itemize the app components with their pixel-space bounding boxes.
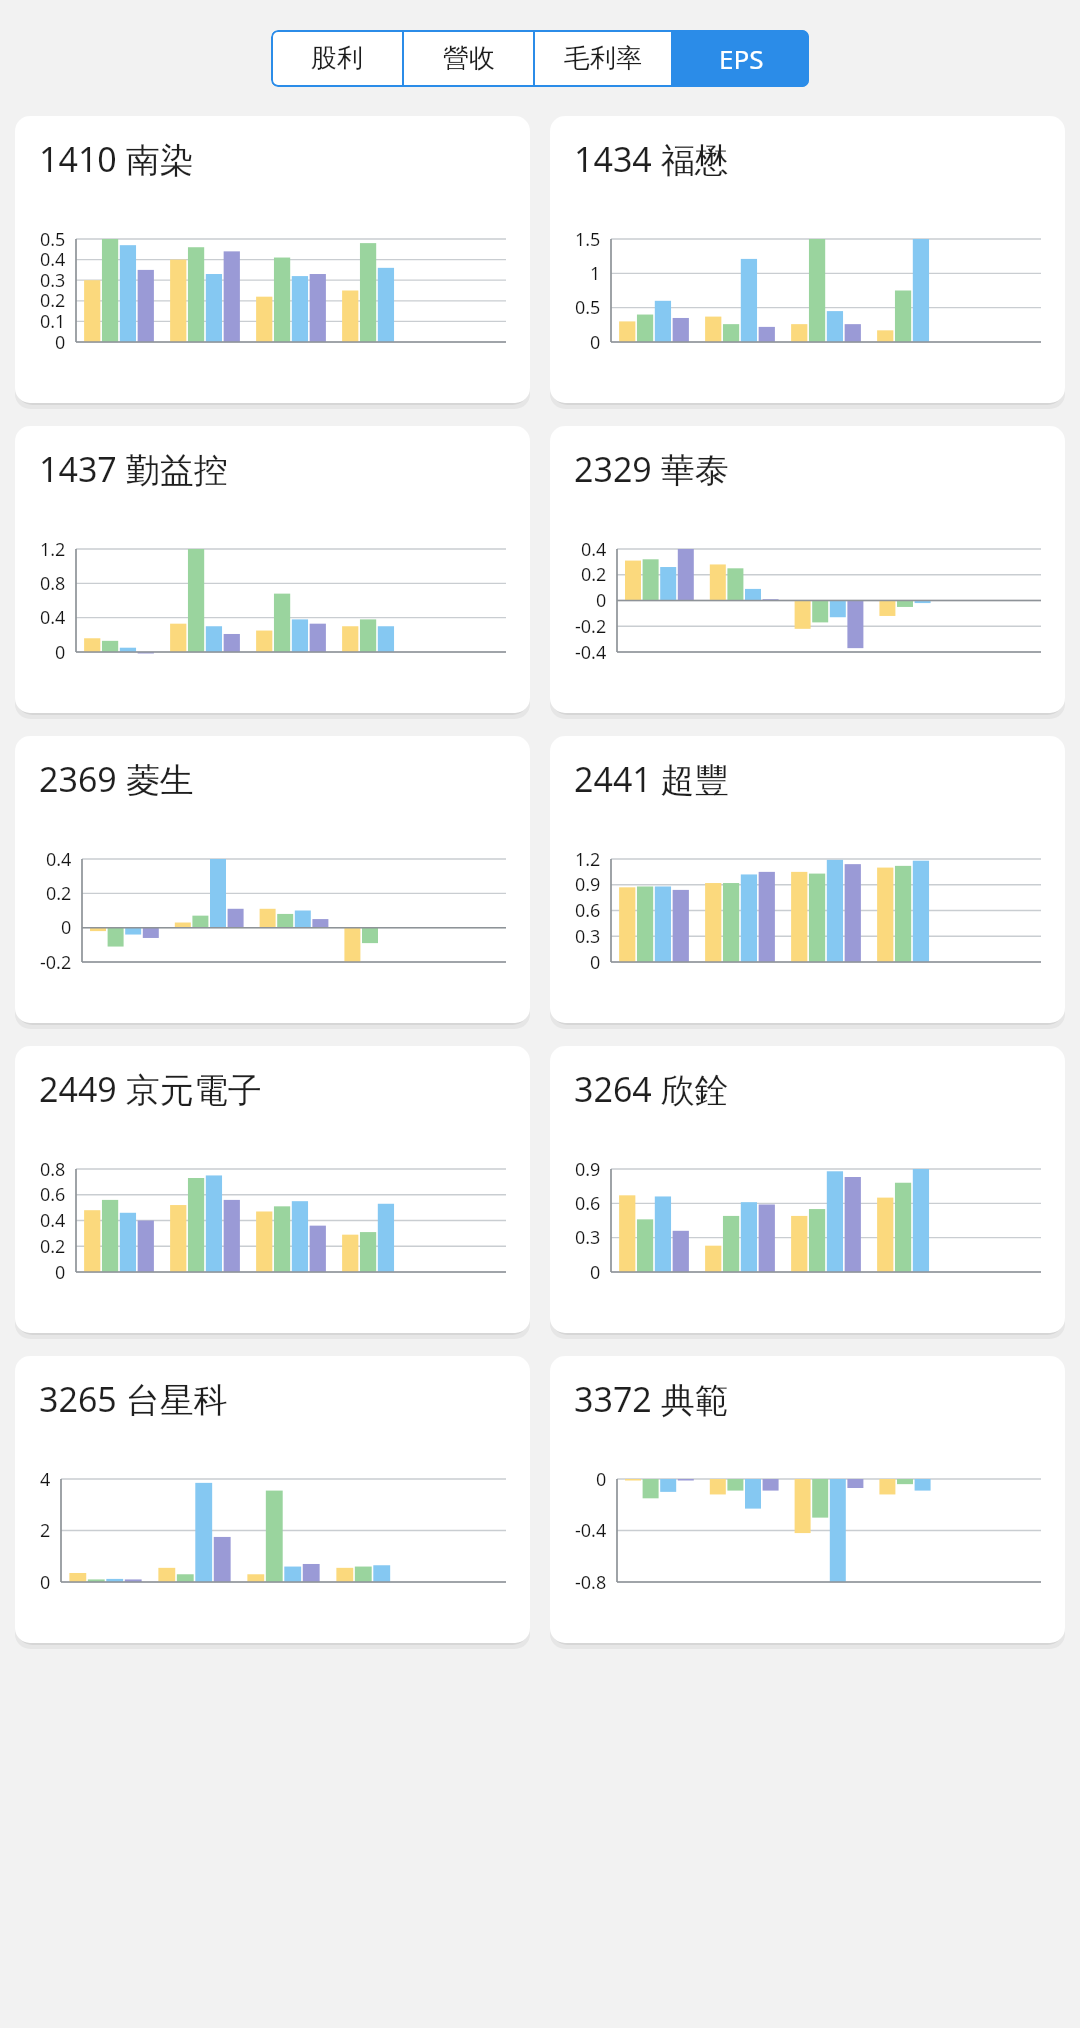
button[interactable]: 2329 華泰 xyxy=(550,426,1065,713)
staticText: 3264 欣銓 xyxy=(574,1066,729,1112)
staticText: 3372 典範 xyxy=(574,1376,729,1422)
staticText: 1437 勤益控 xyxy=(39,446,228,492)
button[interactable]: 2449 京元電子 xyxy=(15,1046,530,1333)
button[interactable]: 營收 xyxy=(404,30,533,87)
staticText: 營收 xyxy=(443,42,495,75)
staticText: 1410 南染 xyxy=(39,136,194,182)
button[interactable]: 3372 典範 xyxy=(550,1356,1065,1643)
button[interactable]: 1437 勤益控 xyxy=(15,426,530,713)
staticText: EPS xyxy=(719,41,764,76)
staticText: 毛利率 xyxy=(564,42,642,75)
staticText: 2449 京元電子 xyxy=(39,1066,262,1112)
staticText: 2369 菱生 xyxy=(39,756,194,802)
button[interactable]: 1410 南染 xyxy=(15,116,530,403)
button[interactable]: 2369 菱生 xyxy=(15,736,530,1023)
button[interactable]: 2441 超豐 xyxy=(550,736,1065,1023)
button[interactable]: 3265 台星科 xyxy=(15,1356,530,1643)
button[interactable]: 毛利率 xyxy=(535,30,671,87)
button[interactable]: 1434 福懋 xyxy=(550,116,1065,403)
staticText: 3265 台星科 xyxy=(39,1376,228,1422)
button[interactable]: 股利 xyxy=(271,30,402,87)
button[interactable]: 3264 欣銓 xyxy=(550,1046,1065,1333)
staticText: 股利 xyxy=(311,42,363,75)
staticText: 1434 福懋 xyxy=(574,136,729,182)
staticText: 2329 華泰 xyxy=(574,446,729,492)
button[interactable]: EPS xyxy=(673,30,809,87)
staticText: 2441 超豐 xyxy=(574,756,729,802)
